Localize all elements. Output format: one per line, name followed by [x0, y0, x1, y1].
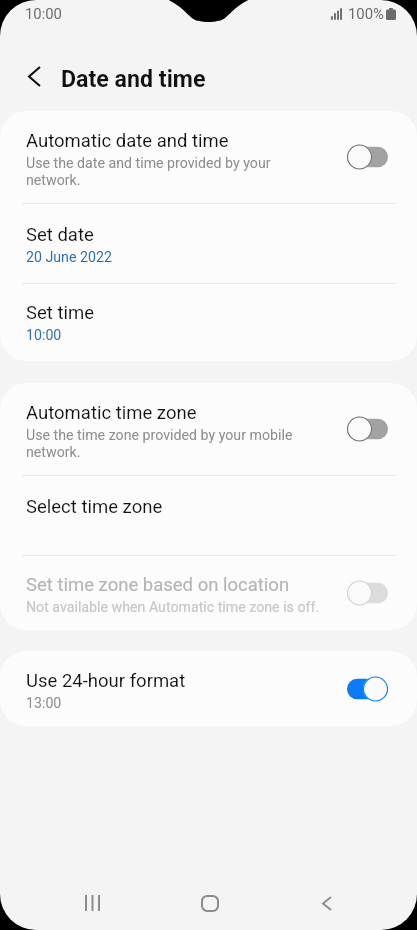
- staticText: Use the time zone provided by your mobil…: [26, 427, 326, 461]
- staticText: Automatic date and time: [26, 130, 229, 152]
- staticText: 20 June 2022: [26, 249, 112, 266]
- button[interactable]: Use 24-hour format: [0, 651, 417, 726]
- button[interactable]: Set time zone based on location: [0, 556, 417, 630]
- button[interactable]: Select time zone: [0, 476, 417, 555]
- staticText: Use the date and time provided by your n…: [26, 155, 326, 189]
- button[interactable]: Navigate up: [18, 60, 51, 93]
- staticText: Automatic time zone: [26, 402, 197, 424]
- button[interactable]: Set date: [0, 204, 417, 283]
- button[interactable]: Home: [185, 878, 235, 928]
- button[interactable]: Automatic time zone: [0, 383, 417, 475]
- staticText: Not available when Automatic time zone i…: [26, 599, 320, 616]
- staticText: Select time zone: [26, 496, 163, 518]
- button[interactable]: Off: [347, 580, 388, 606]
- staticText: 100%: [348, 5, 385, 22]
- staticText: Date and time: [61, 65, 206, 92]
- button[interactable]: Set time: [0, 284, 417, 361]
- button[interactable]: Off: [347, 144, 388, 170]
- staticText: 13:00: [26, 695, 62, 712]
- staticText: Use 24-hour format: [26, 670, 186, 692]
- staticText: Set time: [26, 302, 95, 324]
- staticText: 10:00: [26, 327, 62, 344]
- button[interactable]: Automatic date and time: [0, 111, 417, 203]
- button[interactable]: Off: [347, 416, 388, 442]
- button[interactable]: On: [347, 676, 388, 702]
- button[interactable]: Back: [302, 878, 352, 928]
- staticText: Set date: [26, 224, 94, 246]
- button[interactable]: Recent apps: [67, 878, 117, 928]
- staticText: Set time zone based on location: [26, 574, 290, 596]
- staticText: 10:00: [25, 5, 62, 22]
